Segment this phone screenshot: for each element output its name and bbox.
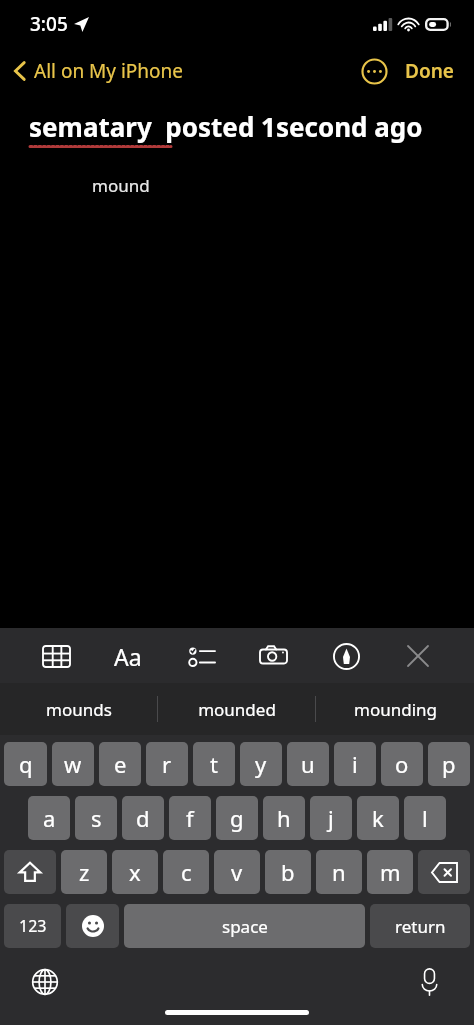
button[interactable]: space xyxy=(124,904,365,948)
staticText: All on My iPhone xyxy=(34,58,184,84)
button[interactable]: j xyxy=(310,796,352,840)
button[interactable]: Close keyboard xyxy=(396,634,440,678)
button[interactable]: g xyxy=(216,796,258,840)
button[interactable]: Insert table xyxy=(34,634,78,678)
staticText: sematary posted 1second ago xyxy=(29,109,423,144)
staticText: 123 xyxy=(19,915,47,937)
staticText: mounds xyxy=(46,698,112,721)
button[interactable]: Dictation xyxy=(410,963,448,1001)
button[interactable]: t xyxy=(193,742,235,786)
staticText: Done xyxy=(405,58,454,84)
button[interactable]: Camera xyxy=(251,634,295,678)
button[interactable]: d xyxy=(122,796,164,840)
staticText: z xyxy=(79,857,90,887)
staticText: u xyxy=(301,749,315,779)
staticText: t xyxy=(210,749,218,779)
staticText: space xyxy=(222,915,268,938)
button[interactable]: s xyxy=(75,796,117,840)
button[interactable]: b xyxy=(265,850,311,894)
staticText: mounding xyxy=(354,698,437,721)
button[interactable]: f xyxy=(169,796,211,840)
button[interactable]: i xyxy=(334,742,376,786)
staticText: h xyxy=(277,803,291,833)
button[interactable]: Done xyxy=(399,52,460,90)
staticText: v xyxy=(231,857,243,887)
button[interactable]: All on My iPhone xyxy=(0,54,194,88)
button[interactable]: Text format xyxy=(106,634,150,678)
button[interactable]: m xyxy=(367,850,413,894)
staticText: l xyxy=(422,803,428,833)
staticText: x xyxy=(129,857,141,887)
staticText: b xyxy=(281,857,295,887)
button[interactable]: w xyxy=(52,742,94,786)
staticText: s xyxy=(91,803,102,833)
button[interactable]: Emoji xyxy=(66,904,119,948)
staticText: j xyxy=(328,803,334,833)
staticText: p xyxy=(442,749,456,779)
button[interactable]: u xyxy=(287,742,329,786)
button[interactable]: k xyxy=(357,796,399,840)
button[interactable]: e xyxy=(99,742,141,786)
staticText: f xyxy=(186,803,194,833)
button[interactable]: l xyxy=(404,796,446,840)
staticText: n xyxy=(332,857,346,887)
staticText: k xyxy=(372,803,384,833)
button[interactable]: More options xyxy=(355,52,393,90)
button[interactable]: p xyxy=(428,742,470,786)
button[interactable]: r xyxy=(146,742,188,786)
button[interactable]: mounding xyxy=(316,683,474,735)
button[interactable]: x xyxy=(112,850,158,894)
button[interactable]: h xyxy=(263,796,305,840)
staticText: e xyxy=(114,749,127,779)
staticText: q xyxy=(19,749,33,779)
button[interactable]: Change keyboard xyxy=(26,963,64,1001)
staticText: d xyxy=(136,803,150,833)
staticText: r xyxy=(162,749,172,779)
button[interactable]: c xyxy=(163,850,209,894)
button[interactable]: o xyxy=(381,742,423,786)
button[interactable]: n xyxy=(316,850,362,894)
button[interactable]: q xyxy=(4,742,47,786)
staticText: mounded xyxy=(198,698,276,721)
button[interactable]: Checklist xyxy=(179,634,223,678)
button[interactable]: mounded xyxy=(158,683,316,735)
button[interactable]: z xyxy=(61,850,107,894)
staticText: i xyxy=(352,749,358,779)
button[interactable]: Markup xyxy=(324,634,368,678)
staticText: mound xyxy=(92,174,150,197)
button[interactable]: mounds xyxy=(0,683,158,735)
staticText: o xyxy=(395,749,409,779)
staticText: g xyxy=(230,803,244,833)
button[interactable]: a xyxy=(28,796,70,840)
staticText: c xyxy=(181,857,192,887)
staticText: Aa xyxy=(114,641,142,672)
staticText: w xyxy=(64,749,82,779)
button[interactable]: Backspace xyxy=(418,850,470,894)
button[interactable]: v xyxy=(214,850,260,894)
staticText: 3:05 xyxy=(30,11,68,37)
button[interactable]: y xyxy=(240,742,282,786)
button[interactable]: Shift xyxy=(4,850,56,894)
staticText: return xyxy=(395,915,446,938)
staticText: y xyxy=(255,749,267,779)
staticText: a xyxy=(43,803,56,833)
button[interactable]: return xyxy=(370,904,470,948)
button[interactable]: 123 xyxy=(4,904,61,948)
staticText: m xyxy=(380,857,401,887)
